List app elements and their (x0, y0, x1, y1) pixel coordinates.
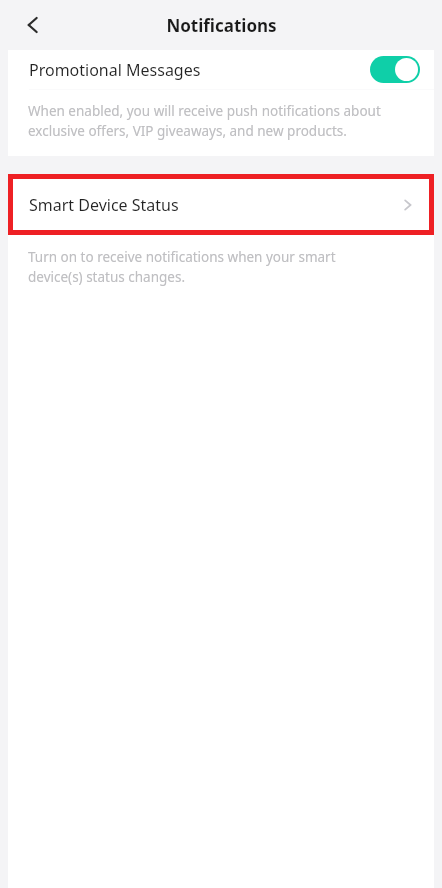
staticText: When enabled, you will receive push noti… (28, 102, 390, 140)
button[interactable]: Promotional Messages (8, 50, 434, 89)
button[interactable]: Promotional Messages toggle (370, 56, 420, 83)
staticText: Smart Device Status (29, 194, 179, 216)
staticText: Promotional Messages (29, 59, 201, 81)
staticText: Turn on to receive notifications when yo… (28, 248, 382, 286)
staticText: Notifications (166, 14, 277, 37)
button[interactable]: Back (12, 3, 56, 47)
button[interactable]: Smart Device Status (13, 179, 429, 230)
